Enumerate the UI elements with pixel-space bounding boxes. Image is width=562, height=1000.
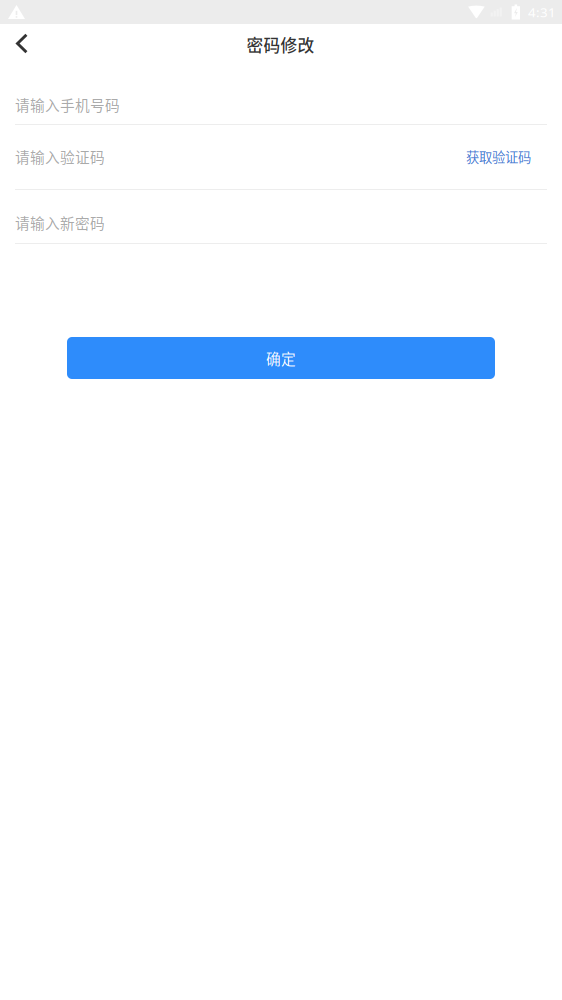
button[interactable]: 请输入验证码 <box>15 147 452 165</box>
button[interactable]: 获取验证码 <box>452 139 547 174</box>
staticText: 请输入手机号码 <box>15 94 120 115</box>
button[interactable]: 确定 <box>67 337 495 379</box>
staticText: 获取验证码 <box>466 147 531 166</box>
button[interactable]: Back <box>0 24 48 68</box>
button[interactable]: 请输入手机号码 <box>15 95 547 113</box>
button[interactable]: 请输入新密码 <box>15 213 547 231</box>
staticText: 请输入新密码 <box>15 212 105 233</box>
staticText: 确定 <box>266 347 296 369</box>
staticText: 4:31 <box>528 3 556 21</box>
staticText: 密码修改 <box>246 32 314 56</box>
staticText: 请输入验证码 <box>15 146 105 167</box>
